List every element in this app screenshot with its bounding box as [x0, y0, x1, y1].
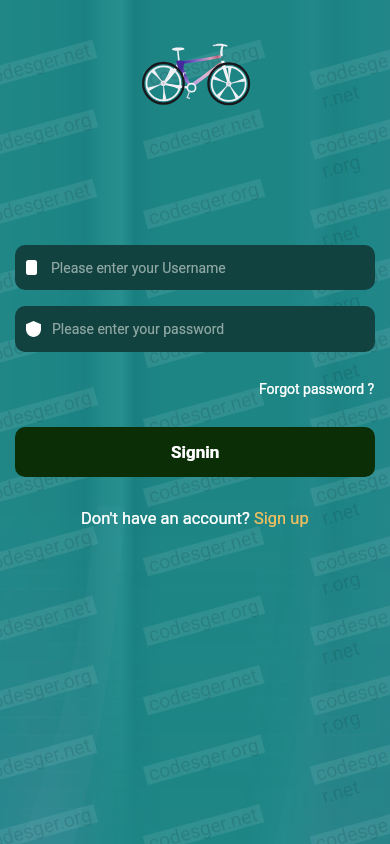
button[interactable]: Forgot password ?	[245, 377, 390, 401]
staticText: Signin	[171, 442, 220, 462]
other: Bicycle logo	[137, 40, 253, 110]
staticText: Forgot password ?	[259, 381, 375, 397]
staticText: Don't have an account?	[81, 509, 254, 528]
staticText: Please enter your Username	[51, 260, 226, 276]
button[interactable]: Please enter your Username	[15, 245, 375, 290]
button[interactable]: Sign up	[254, 509, 309, 528]
staticText: Please enter your password	[52, 321, 225, 337]
button[interactable]: Signin	[15, 427, 375, 477]
button[interactable]: Please enter your password	[15, 306, 375, 352]
staticText: Sign up	[254, 509, 309, 528]
